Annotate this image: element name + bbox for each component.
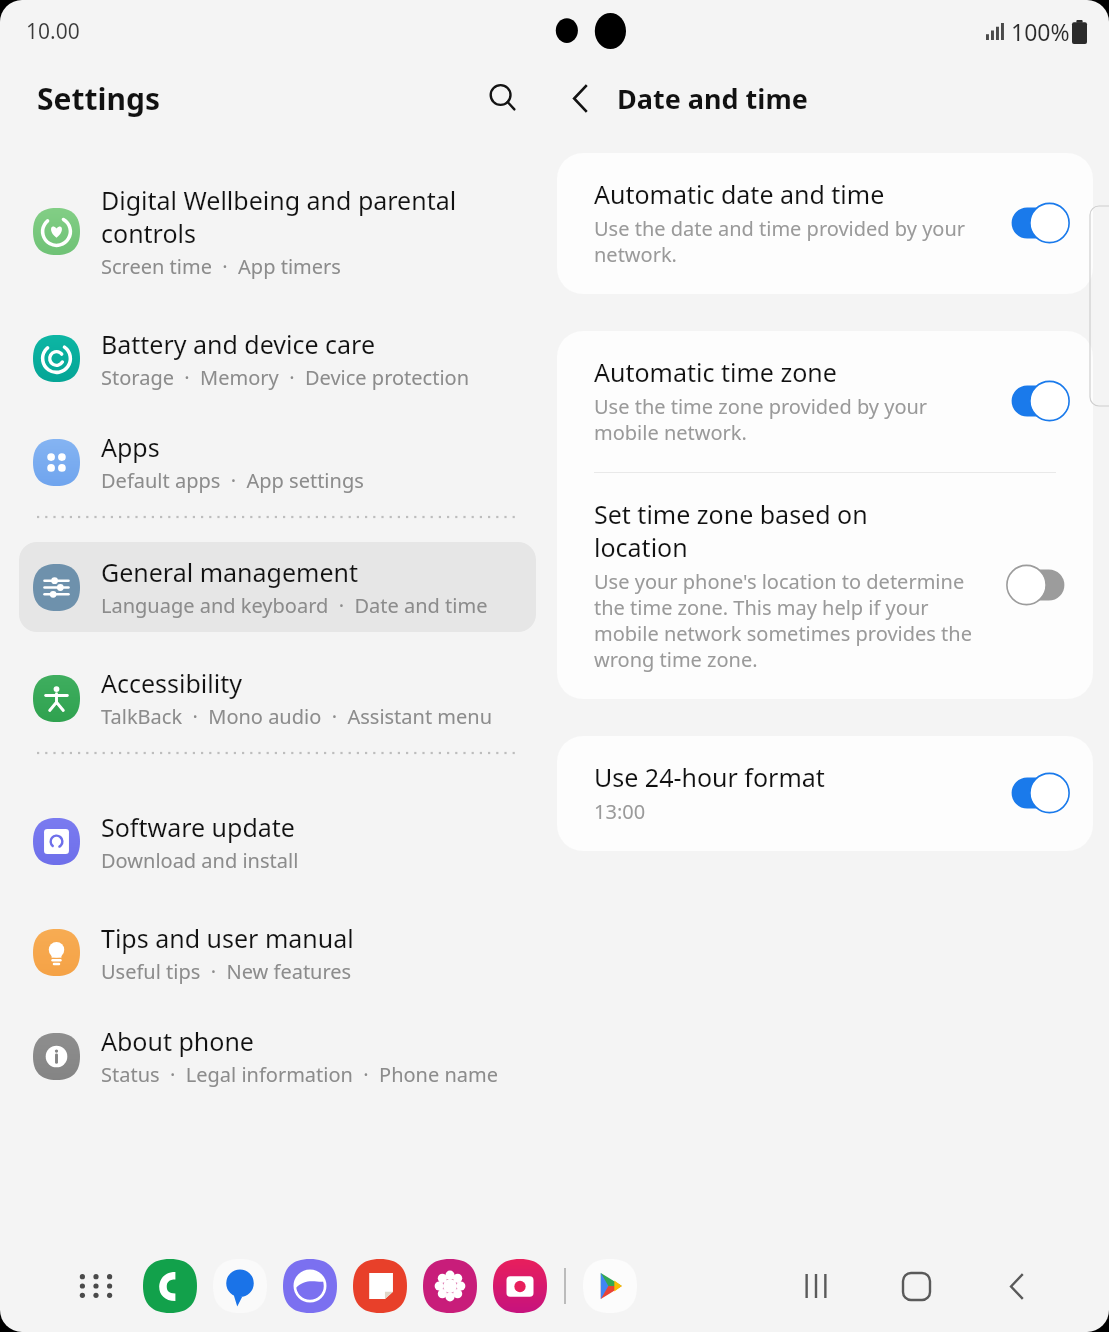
button[interactable]: General management <box>19 542 536 632</box>
staticText: Use your phone's location to determine t… <box>594 568 972 673</box>
staticText: Software update <box>101 810 295 844</box>
button[interactable]: Automatic time zone <box>557 331 1093 472</box>
button[interactable]: Back <box>555 73 605 123</box>
staticText: Download and install <box>101 847 299 874</box>
button[interactable]: On <box>1005 203 1071 243</box>
button[interactable]: gallery <box>422 1258 478 1314</box>
staticText: Use the date and time provided by your n… <box>594 215 966 268</box>
staticText: General management <box>101 555 358 589</box>
button[interactable]: About phone <box>0 1008 555 1104</box>
staticText: About phone <box>101 1024 254 1058</box>
staticText: Digital Wellbeing and parental controls <box>101 183 457 250</box>
button[interactable]: Home <box>881 1251 951 1321</box>
button[interactable]: camera <box>492 1258 548 1314</box>
staticText: Accessibility <box>101 666 242 700</box>
staticText: Settings <box>37 78 160 119</box>
staticText: Date and time <box>617 80 808 117</box>
button[interactable]: Battery and device care <box>0 303 555 414</box>
staticText: Battery and device care <box>101 327 376 361</box>
button[interactable]: Software update <box>0 786 555 897</box>
button[interactable]: notes <box>352 1258 408 1314</box>
button[interactable]: play <box>582 1258 638 1314</box>
staticText: Storage · Memory · Device protection <box>101 364 470 391</box>
button[interactable]: Recents <box>781 1251 851 1321</box>
button[interactable]: Automatic date and time <box>557 153 1093 294</box>
staticText: Automatic date and time <box>594 177 885 211</box>
button[interactable]: Off <box>1005 565 1071 605</box>
button[interactable]: messages <box>212 1258 268 1314</box>
button[interactable]: Use 24-hour format <box>557 736 1093 851</box>
button[interactable]: internet <box>282 1258 338 1314</box>
staticText: 10.00 <box>26 17 80 46</box>
staticText: Use the time zone provided by your mobil… <box>594 393 928 446</box>
staticText: Status · Legal information · Phone name <box>101 1061 499 1088</box>
button[interactable]: On <box>1005 381 1071 421</box>
button[interactable]: Digital Wellbeing and parental controls <box>0 159 555 303</box>
button[interactable]: All apps <box>68 1258 124 1314</box>
staticText: 13:00 <box>594 798 646 825</box>
button[interactable]: Apps <box>0 414 555 510</box>
staticText: Default apps · App settings <box>101 467 364 494</box>
staticText: Useful tips · New features <box>101 958 352 985</box>
staticText: Apps <box>101 430 160 464</box>
staticText: Use 24-hour format <box>594 760 825 794</box>
staticText: Set time zone based on location <box>594 497 868 564</box>
button[interactable]: Set time zone based on location <box>557 473 1093 699</box>
button[interactable]: Search <box>479 74 527 122</box>
staticText: Screen time · App timers <box>101 253 341 280</box>
staticText: Language and keyboard · Date and time <box>101 592 488 619</box>
button[interactable]: Back <box>981 1251 1051 1321</box>
button[interactable]: Tips and user manual <box>0 897 555 1008</box>
button[interactable]: On <box>1005 773 1071 813</box>
button[interactable]: Accessibility <box>0 650 555 746</box>
staticText: Tips and user manual <box>101 921 354 955</box>
button[interactable]: phone <box>142 1258 198 1314</box>
staticText: TalkBack · Mono audio · Assistant menu <box>101 703 493 730</box>
staticText: Automatic time zone <box>594 355 837 389</box>
staticText: 100% <box>1011 16 1070 47</box>
